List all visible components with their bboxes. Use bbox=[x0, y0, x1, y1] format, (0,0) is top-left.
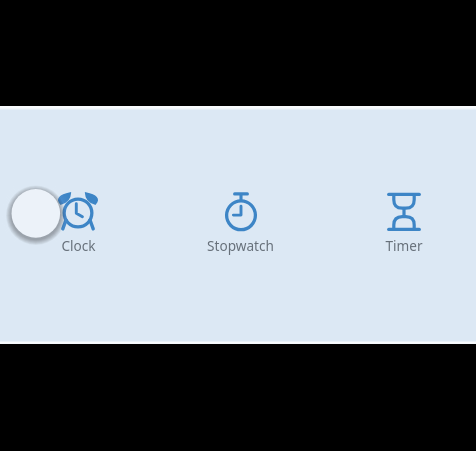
staticText: Stopwatch bbox=[207, 236, 274, 255]
staticText: Timer bbox=[385, 236, 423, 255]
button[interactable]: Stopwatch bbox=[159, 106, 322, 344]
staticText: Clock bbox=[61, 236, 96, 255]
button[interactable]: Clock bbox=[0, 106, 159, 344]
button[interactable]: Timer bbox=[322, 106, 476, 344]
